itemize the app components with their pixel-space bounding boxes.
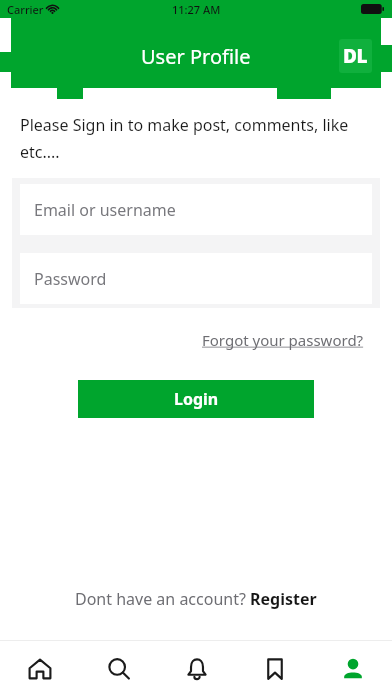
button[interactable]: Home xyxy=(0,641,79,696)
staticText: Forgot your password? xyxy=(202,330,364,350)
button[interactable]: DL logo xyxy=(339,39,372,73)
staticText: Password xyxy=(34,268,107,290)
button[interactable]: Email or username xyxy=(20,184,372,235)
staticText: Please Sign in to make post, comments, l… xyxy=(20,114,370,163)
button[interactable]: Notifications xyxy=(158,641,236,696)
button[interactable]: Login xyxy=(78,380,314,418)
button[interactable]: Bookmarks xyxy=(236,641,314,696)
staticText: User Profile xyxy=(141,43,251,70)
button[interactable]: Password xyxy=(20,253,372,304)
staticText: DL xyxy=(343,43,368,69)
button[interactable]: Search xyxy=(79,641,158,696)
button[interactable]: Forgot your password? xyxy=(198,326,368,354)
staticText: Carrier xyxy=(7,2,44,17)
staticText: Dont have an account? Register xyxy=(75,588,317,610)
staticText: Login xyxy=(174,388,219,410)
staticText: 11:27 AM xyxy=(172,2,221,17)
button[interactable]: Dont have an account? Register xyxy=(67,584,325,614)
staticText: Email or username xyxy=(34,199,176,221)
button[interactable]: Profile xyxy=(314,641,392,696)
